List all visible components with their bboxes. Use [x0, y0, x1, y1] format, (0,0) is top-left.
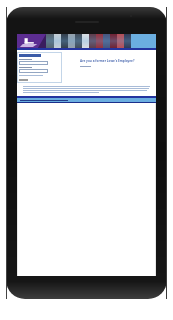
button[interactable] — [17, 98, 156, 102]
staticText: Are you a former Lowe's Employee? — [80, 59, 135, 63]
button[interactable]: Username — [19, 61, 48, 65]
button[interactable]: Are you a former Lowe's Employee? — [80, 59, 135, 63]
button[interactable]: Lowe's logo home — [17, 34, 46, 48]
button[interactable]: Password — [19, 69, 48, 73]
